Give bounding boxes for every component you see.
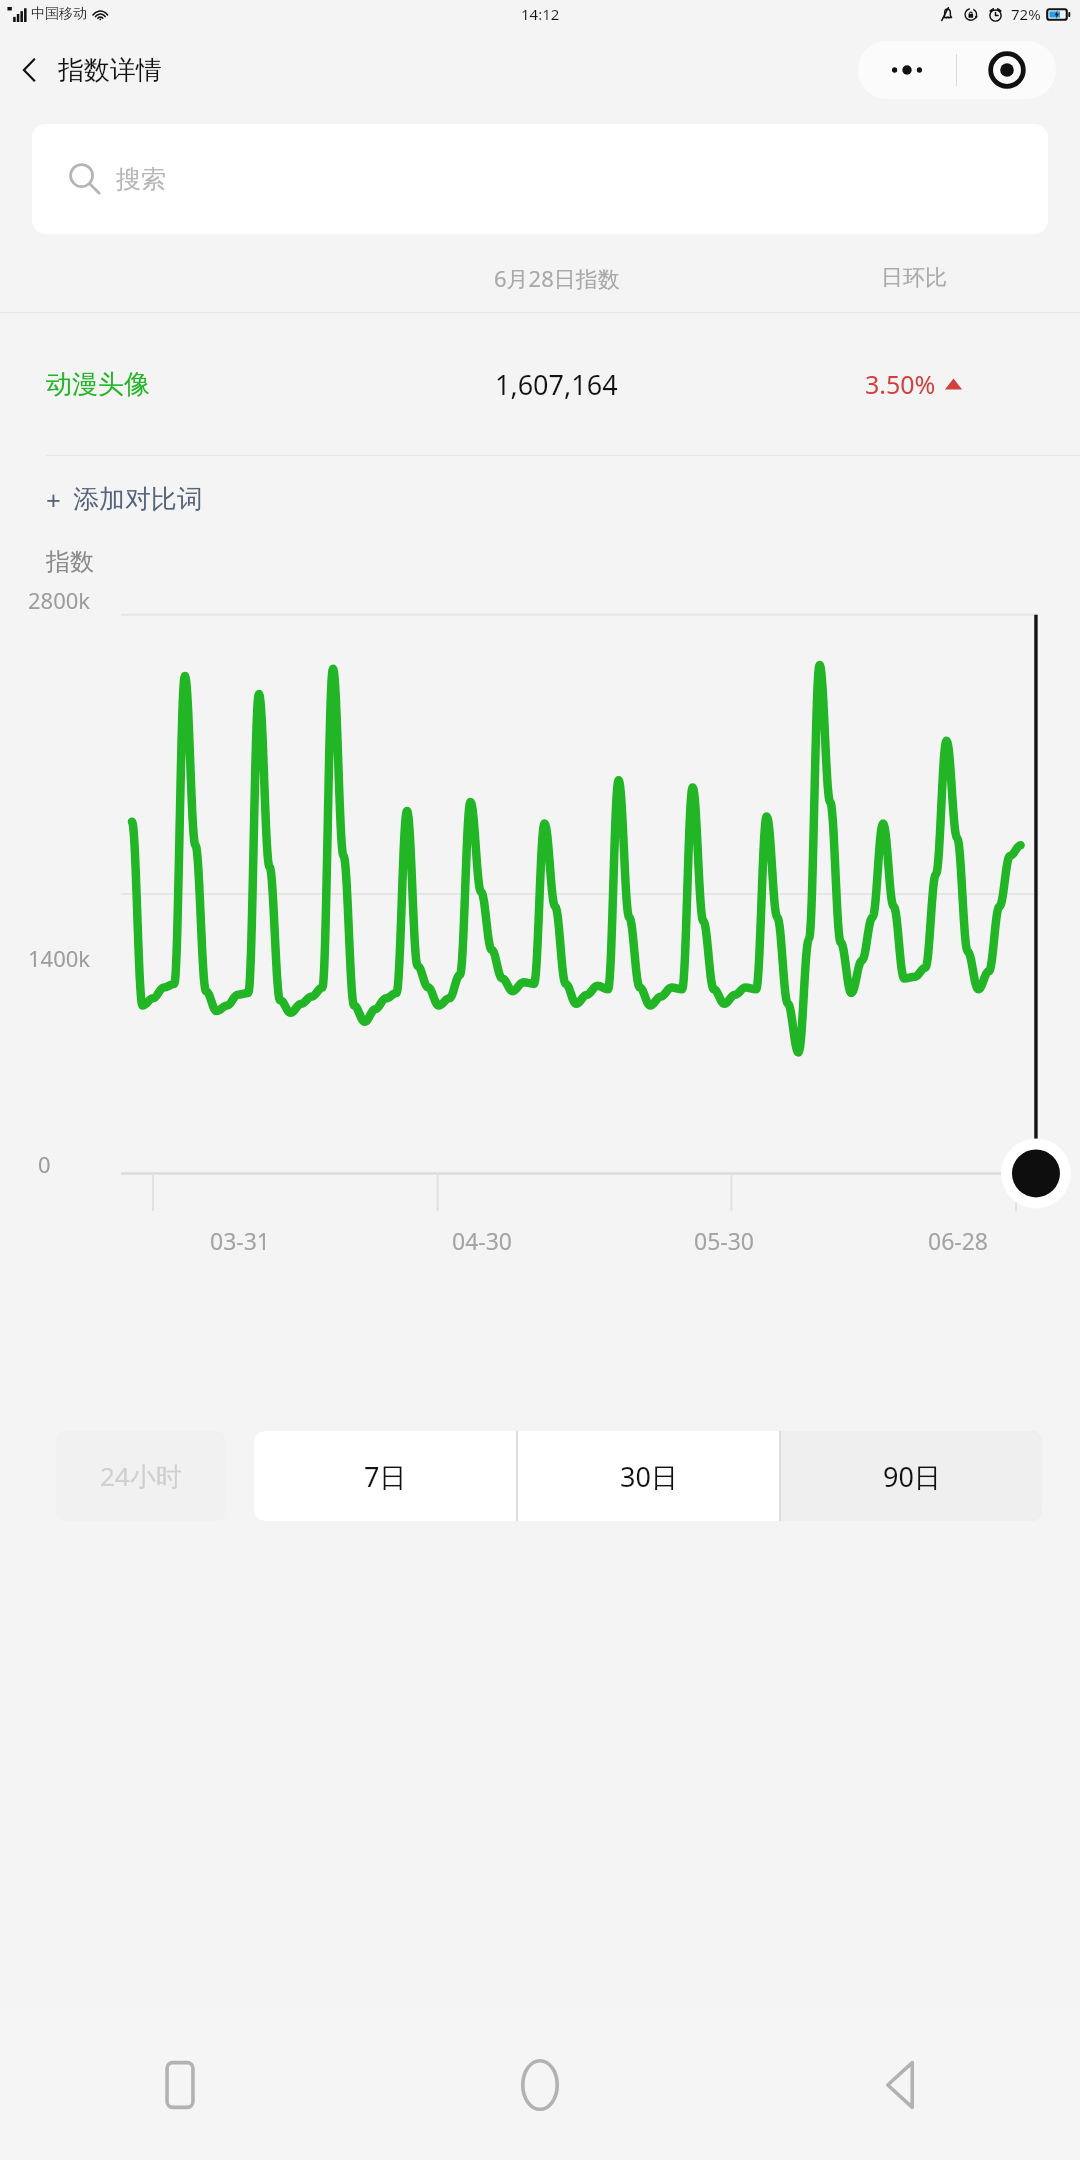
staticText: 03-31 (210, 1225, 271, 1256)
button[interactable]: Recent apps (0, 2010, 360, 2160)
staticText: 24小时 (100, 1458, 182, 1494)
staticText: 72% (1011, 4, 1041, 24)
staticText: 日环比 (881, 264, 947, 292)
staticText: 指数详情 (58, 54, 162, 87)
button[interactable]: More options (858, 41, 956, 99)
staticText: 指数 (46, 547, 94, 577)
staticText: 90日 (883, 1458, 941, 1495)
button[interactable]: Close mini program (957, 41, 1056, 99)
button[interactable]: Back (0, 41, 58, 99)
staticText: 添加对比词 (73, 483, 203, 516)
staticText: 30日 (620, 1458, 678, 1495)
staticText: 0 (38, 1149, 51, 1179)
staticText: 1,607,164 (495, 366, 618, 403)
staticText: 7日 (364, 1458, 407, 1495)
staticText: 2800k (28, 585, 91, 615)
staticText: 搜索 (116, 164, 166, 195)
button[interactable]: 24小时 (56, 1431, 226, 1521)
staticText: 6月28日指数 (494, 263, 620, 293)
button[interactable]: 动漫头像 (0, 313, 1080, 455)
button[interactable]: 90日 (781, 1431, 1042, 1521)
staticText: 06-28 (928, 1225, 989, 1256)
staticText: 3.50% (865, 367, 936, 401)
staticText: 动漫头像 (46, 368, 150, 401)
button[interactable]: Home (360, 2010, 720, 2160)
button[interactable]: 7日 (254, 1431, 516, 1521)
staticText: 1400k (28, 943, 91, 973)
staticText: + (46, 482, 61, 517)
button[interactable]: 30日 (518, 1431, 779, 1521)
button[interactable]: Back (720, 2010, 1080, 2160)
button[interactable]: + (40, 476, 213, 523)
button[interactable]: 搜索 (32, 124, 1048, 234)
staticText: 中国移动 (31, 5, 87, 23)
staticText: 05-30 (694, 1225, 755, 1256)
staticText: 14:12 (521, 4, 560, 24)
staticText: 04-30 (452, 1225, 513, 1256)
